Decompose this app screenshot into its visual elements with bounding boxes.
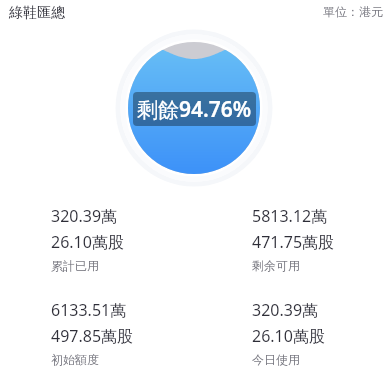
- staticText: 26.10萬股: [252, 325, 325, 347]
- staticText: 320.39萬: [252, 299, 319, 321]
- staticText: 320.39萬: [51, 205, 118, 227]
- staticText: 剩余可用: [252, 258, 300, 273]
- staticText: 剩餘94.76%: [137, 95, 252, 124]
- staticText: 綠鞋匯總: [9, 4, 65, 22]
- staticText: 累計已用: [51, 258, 99, 273]
- staticText: 26.10萬股: [51, 231, 124, 253]
- staticText: 單位：港元: [323, 4, 383, 19]
- staticText: 497.85萬股: [51, 325, 134, 347]
- staticText: 初始額度: [51, 352, 99, 367]
- staticText: 今日使用: [252, 352, 300, 367]
- staticText: 471.75萬股: [252, 231, 335, 253]
- staticText: 5813.12萬: [252, 205, 328, 227]
- button[interactable]: 剩餘94.76%: [133, 92, 256, 126]
- staticText: 6133.51萬: [51, 299, 127, 321]
